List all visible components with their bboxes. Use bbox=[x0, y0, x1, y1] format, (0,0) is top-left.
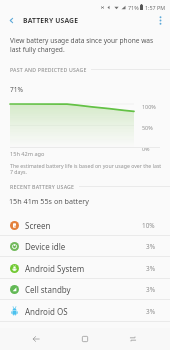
staticText: 100% bbox=[142, 103, 156, 110]
button[interactable]: Android System bbox=[0, 257, 170, 279]
staticText: Cell standby bbox=[25, 284, 71, 295]
button[interactable]: Cell standby bbox=[0, 278, 170, 300]
staticText: Screen bbox=[25, 220, 51, 231]
staticText: 3% bbox=[146, 285, 155, 294]
staticText: 71% bbox=[10, 85, 24, 94]
staticText: 0% bbox=[142, 145, 150, 152]
staticText: 15h 41m 55s on battery bbox=[9, 196, 89, 206]
staticText: RECENT BATTERY USAGE bbox=[10, 183, 75, 190]
button[interactable]: Home bbox=[72, 328, 98, 350]
staticText: PAST AND PREDICTED USAGE bbox=[10, 66, 87, 73]
button[interactable]: Screen bbox=[0, 214, 170, 236]
button[interactable]: Android OS bbox=[0, 300, 170, 322]
button[interactable]: More options bbox=[150, 13, 170, 28]
staticText: BATTERY USAGE bbox=[23, 16, 79, 25]
staticText: 50% bbox=[142, 124, 153, 131]
staticText: 71% bbox=[128, 4, 139, 11]
staticText: 1:57 PM bbox=[145, 4, 166, 11]
staticText: 3% bbox=[146, 242, 155, 251]
staticText: Android System bbox=[25, 263, 85, 274]
staticText: 15h 42m ago bbox=[10, 150, 45, 158]
staticText: View battery usage data since your phone… bbox=[10, 36, 154, 54]
button[interactable]: Recent apps bbox=[120, 328, 146, 350]
button[interactable]: Navigate up bbox=[0, 13, 22, 28]
staticText: 3% bbox=[146, 264, 155, 273]
staticText: Device idle bbox=[25, 241, 66, 252]
staticText: The estimated battery life is based on y… bbox=[10, 162, 162, 176]
staticText: 3% bbox=[146, 307, 155, 316]
button[interactable]: Back bbox=[23, 328, 49, 350]
button[interactable]: Device idle bbox=[0, 235, 170, 257]
staticText: 10% bbox=[142, 221, 155, 230]
staticText: Android OS bbox=[25, 306, 68, 317]
